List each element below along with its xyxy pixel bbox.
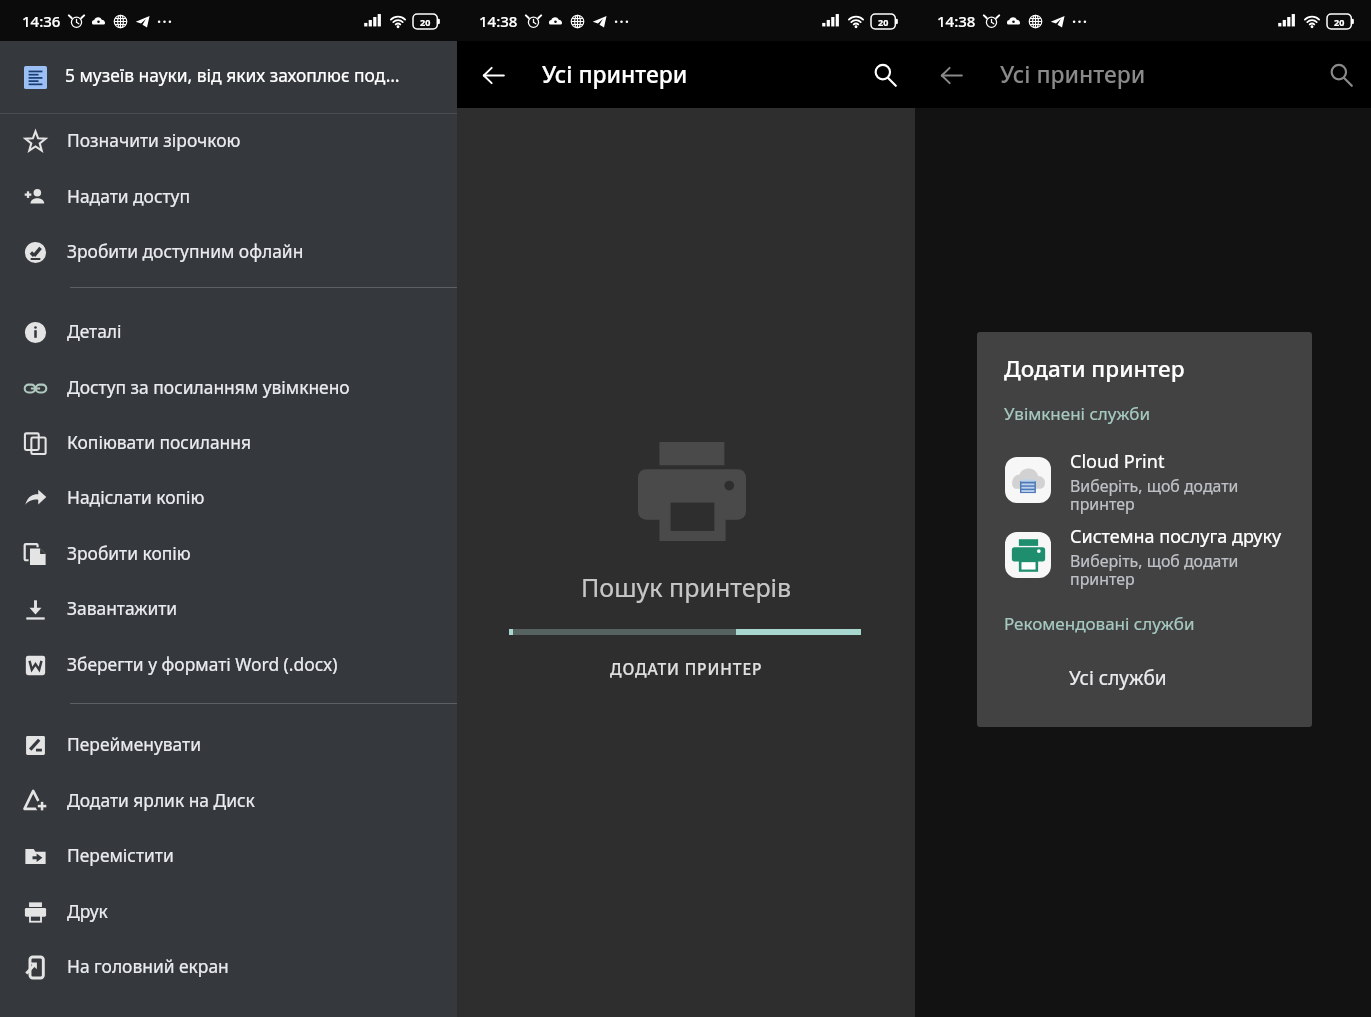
button[interactable]: Додати ярлик на Диск (0, 773, 457, 828)
staticText: 20 (420, 16, 431, 28)
staticText: Рекомендовані служби (1004, 612, 1195, 635)
staticText: Усі принтери (542, 59, 688, 90)
button[interactable]: На головний екран (0, 939, 457, 994)
button[interactable]: Системна послуга друку (977, 525, 1312, 600)
staticText: 20 (1334, 16, 1345, 28)
staticText: 20 (878, 16, 889, 28)
staticText: Деталі (67, 319, 122, 343)
button[interactable]: ДОДАТИ ПРИНТЕР (457, 647, 915, 689)
button[interactable]: Надіслати копію (0, 470, 457, 525)
button[interactable]: Завантажити (0, 581, 457, 636)
button[interactable]: Позначити зірочкою (0, 113, 457, 168)
staticText: На головний екран (67, 954, 229, 978)
staticText: 14:36 (22, 11, 61, 31)
button[interactable]: Перемістити (0, 828, 457, 883)
button[interactable]: Search (857, 47, 913, 103)
button[interactable]: Копіювати посилання (0, 415, 457, 470)
button[interactable]: Деталі (0, 304, 457, 359)
button[interactable]: Back (923, 47, 979, 103)
button[interactable]: Back (465, 47, 521, 103)
staticText: Усі принтери (1000, 59, 1146, 90)
staticText: 14:38 (937, 11, 976, 31)
staticText: Зробити копію (67, 541, 191, 565)
button[interactable]: Друк (0, 884, 457, 939)
staticText: Копіювати посилання (67, 430, 251, 454)
button[interactable]: Перейменувати (0, 717, 457, 772)
staticText: 5 музеїв науки, від яких захоплює под… (65, 63, 443, 87)
staticText: Додати ярлик на Диск (67, 788, 255, 812)
button[interactable]: Search (1313, 47, 1369, 103)
staticText: Cloud Print (1070, 449, 1165, 474)
staticText: Системна послуга друку (1070, 524, 1282, 549)
staticText: Друк (67, 899, 108, 923)
button[interactable]: Доступ за посиланням увімкнено (0, 360, 457, 415)
staticText: Перейменувати (67, 732, 201, 756)
staticText: Зберегти у форматі Word (.docx) (67, 652, 338, 676)
staticText: Позначити зірочкою (67, 128, 241, 152)
staticText: Пошук принтерів (581, 570, 792, 604)
button[interactable]: 5 музеїв науки, від яких захоплює под… (0, 41, 457, 113)
button[interactable]: Зробити доступним офлайн (0, 224, 457, 279)
staticText: Виберіть, щоб додати принтер (1070, 550, 1239, 589)
staticText: Зробити доступним офлайн (67, 239, 304, 263)
staticText: Усі служби (1069, 665, 1167, 691)
staticText: Доступ за посиланням увімкнено (67, 375, 350, 399)
button[interactable]: Надати доступ (0, 169, 457, 224)
staticText: Перемістити (67, 843, 174, 867)
button[interactable]: Зробити копію (0, 526, 457, 581)
staticText: Завантажити (67, 596, 178, 620)
button[interactable]: Усі служби (977, 650, 1312, 705)
staticText: Додати принтер (1004, 353, 1185, 384)
staticText: Надіслати копію (67, 485, 205, 509)
staticText: ДОДАТИ ПРИНТЕР (610, 658, 763, 679)
staticText: Надати доступ (67, 184, 190, 208)
staticText: Виберіть, щоб додати принтер (1070, 475, 1239, 514)
staticText: Увімкнені служби (1004, 402, 1151, 425)
button[interactable]: Cloud Print (977, 450, 1312, 525)
staticText: 14:38 (479, 11, 518, 31)
button[interactable]: Зберегти у форматі Word (.docx) (0, 637, 457, 692)
